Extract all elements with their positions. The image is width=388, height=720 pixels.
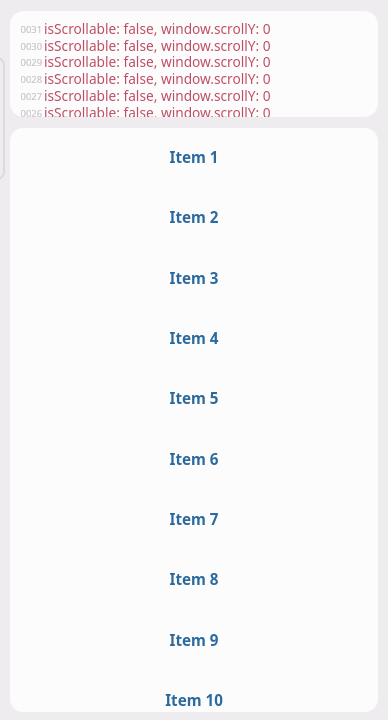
staticText: isScrollable: false, window.scrollY: 0 bbox=[44, 36, 271, 53]
staticText: isScrollable: false, window.scrollY: 0 bbox=[44, 103, 271, 117]
button[interactable]: Item 9 bbox=[10, 610, 378, 670]
button[interactable]: Item 3 bbox=[10, 248, 378, 308]
staticText: isScrollable: false, window.scrollY: 0 bbox=[44, 19, 271, 36]
button[interactable]: Item 5 bbox=[10, 368, 378, 428]
staticText: 0031 bbox=[12, 23, 42, 36]
staticText: 0028 bbox=[12, 73, 42, 86]
staticText: Item 8 bbox=[169, 569, 219, 590]
button[interactable]: Previous card bbox=[0, 57, 5, 180]
staticText: 0026 bbox=[12, 107, 42, 117]
staticText: isScrollable: false, window.scrollY: 0 bbox=[44, 86, 271, 103]
button[interactable]: Console log bbox=[10, 11, 378, 117]
button[interactable]: Item 6 bbox=[10, 429, 378, 489]
staticText: Item 5 bbox=[169, 388, 219, 409]
button[interactable]: Item 4 bbox=[10, 308, 378, 368]
staticText: isScrollable: false, window.scrollY: 0 bbox=[44, 69, 271, 86]
staticText: Item 7 bbox=[169, 509, 219, 530]
staticText: 0029 bbox=[12, 56, 42, 69]
button[interactable]: Item 2 bbox=[10, 187, 378, 247]
staticText: 0030 bbox=[12, 40, 42, 53]
staticText: Item 3 bbox=[169, 268, 219, 289]
button[interactable]: Item 8 bbox=[10, 549, 378, 609]
staticText: isScrollable: false, window.scrollY: 0 bbox=[44, 52, 271, 69]
staticText: Item 9 bbox=[169, 630, 219, 651]
staticText: Item 4 bbox=[169, 328, 219, 349]
button[interactable]: Item 7 bbox=[10, 489, 378, 549]
staticText: Item 2 bbox=[169, 207, 219, 228]
button[interactable]: Item 1 bbox=[10, 128, 378, 187]
staticText: Item 1 bbox=[169, 147, 219, 168]
button[interactable]: Item 10 bbox=[10, 670, 378, 712]
staticText: Item 6 bbox=[169, 449, 219, 470]
staticText: Item 10 bbox=[165, 690, 223, 711]
staticText: 0027 bbox=[12, 90, 42, 103]
